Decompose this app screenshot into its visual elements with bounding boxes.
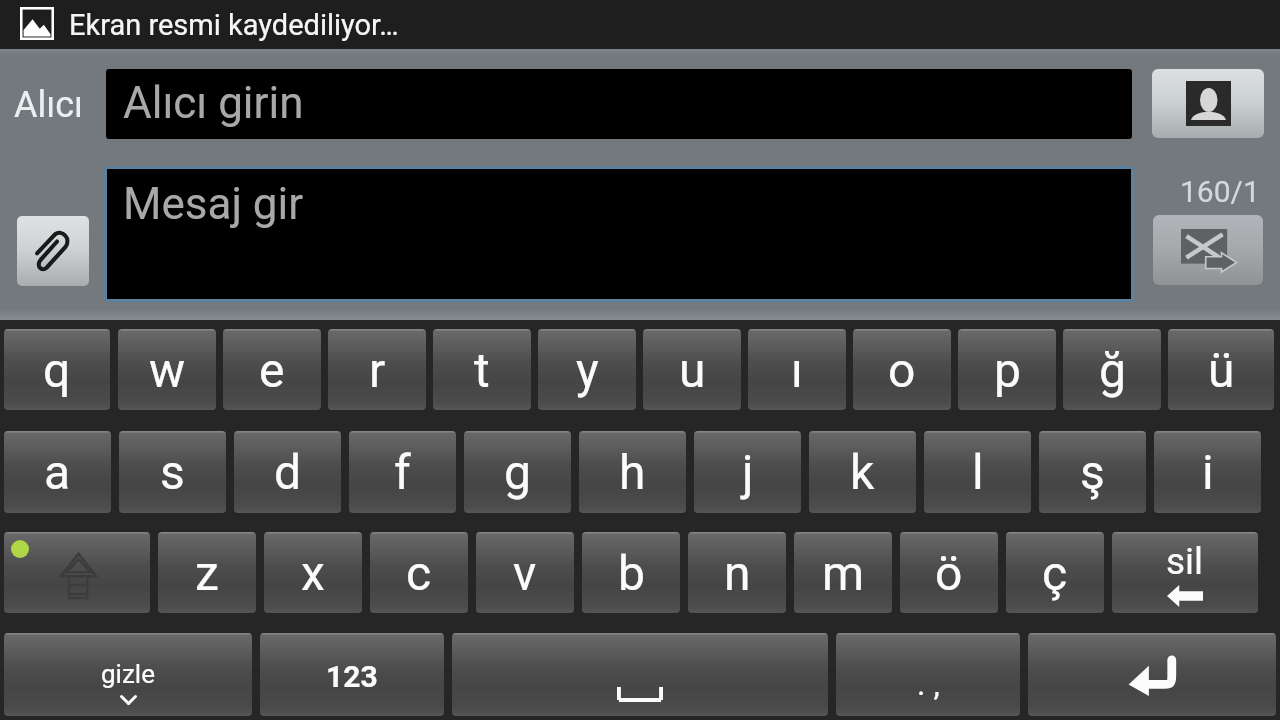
- button[interactable]: p: [958, 329, 1056, 410]
- button[interactable]: 123: [260, 633, 444, 716]
- staticText: v: [513, 545, 537, 601]
- button[interactable]: Gonder: [1153, 215, 1263, 285]
- staticText: ç: [1042, 545, 1068, 601]
- button[interactable]: Ek ekle: [17, 216, 89, 286]
- staticText: t: [474, 342, 490, 398]
- staticText: n: [724, 545, 751, 601]
- button[interactable]: k: [809, 431, 916, 513]
- button[interactable]: e: [223, 329, 321, 410]
- staticText: x: [301, 545, 325, 601]
- staticText: ö: [935, 545, 963, 601]
- staticText: b: [618, 545, 645, 601]
- button[interactable]: h: [579, 431, 686, 513]
- button[interactable]: Mesaj gir: [107, 169, 1131, 299]
- staticText: j: [742, 444, 754, 500]
- button[interactable]: ı: [748, 329, 846, 410]
- staticText: Mesaj gir: [123, 178, 304, 230]
- staticText: ı: [791, 342, 803, 398]
- staticText: f: [394, 444, 411, 500]
- button[interactable]: Sil: [1112, 532, 1258, 613]
- button[interactable]: Alıcı: [14, 82, 94, 128]
- button[interactable]: y: [538, 329, 636, 410]
- staticText: w: [149, 342, 186, 398]
- staticText: u: [679, 342, 706, 398]
- button[interactable]: . ,: [836, 633, 1020, 716]
- staticText: 123: [326, 659, 378, 694]
- button[interactable]: c: [370, 532, 468, 613]
- staticText: sil: [1166, 540, 1204, 583]
- staticText: i: [1202, 444, 1214, 500]
- button[interactable]: Alıcı girin: [106, 69, 1132, 139]
- staticText: Alıcı: [14, 84, 83, 126]
- button[interactable]: g: [464, 431, 571, 513]
- button[interactable]: Shift: [4, 532, 150, 613]
- button[interactable]: m: [794, 532, 892, 613]
- button[interactable]: x: [264, 532, 362, 613]
- button[interactable]: f: [349, 431, 456, 513]
- button[interactable]: j: [694, 431, 801, 513]
- button[interactable]: v: [476, 532, 574, 613]
- button[interactable]: t: [433, 329, 531, 410]
- button[interactable]: r: [328, 329, 426, 410]
- staticText: Alıcı girin: [123, 77, 304, 129]
- staticText: k: [850, 444, 875, 500]
- button[interactable]: ü: [1168, 329, 1274, 410]
- button[interactable]: u: [643, 329, 741, 410]
- staticText: 160/1: [1180, 174, 1260, 209]
- button[interactable]: ç: [1006, 532, 1104, 613]
- button[interactable]: l: [924, 431, 1031, 513]
- staticText: a: [44, 444, 71, 500]
- staticText: s: [160, 444, 185, 500]
- button[interactable]: s: [119, 431, 226, 513]
- button[interactable]: i: [1154, 431, 1261, 513]
- button[interactable]: ğ: [1063, 329, 1161, 410]
- button[interactable]: q: [4, 329, 110, 410]
- button[interactable]: ö: [900, 532, 998, 613]
- staticText: ğ: [1099, 342, 1126, 398]
- staticText: g: [504, 444, 531, 500]
- button[interactable]: z: [158, 532, 256, 613]
- staticText: q: [43, 342, 71, 398]
- staticText: o: [888, 342, 916, 398]
- button[interactable]: gizle: [4, 633, 252, 716]
- staticText: y: [576, 342, 599, 398]
- staticText: d: [274, 444, 302, 500]
- button[interactable]: o: [853, 329, 951, 410]
- staticText: . ,: [917, 665, 940, 703]
- staticText: p: [994, 342, 1021, 398]
- staticText: r: [369, 342, 386, 398]
- staticText: gizle: [101, 659, 155, 689]
- staticText: c: [406, 545, 432, 601]
- button[interactable]: a: [4, 431, 111, 513]
- staticText: Ekran resmi kaydediliyor…: [69, 8, 399, 42]
- staticText: m: [822, 545, 865, 601]
- button[interactable]: Kisi sec: [1152, 69, 1264, 138]
- button[interactable]: Boşluk: [452, 633, 828, 716]
- button[interactable]: n: [688, 532, 786, 613]
- button[interactable]: w: [118, 329, 216, 410]
- button[interactable]: d: [234, 431, 341, 513]
- staticText: ü: [1208, 342, 1235, 398]
- staticText: e: [259, 342, 285, 398]
- button[interactable]: Enter: [1028, 633, 1276, 716]
- staticText: l: [972, 444, 984, 500]
- staticText: ş: [1080, 444, 1105, 500]
- staticText: h: [619, 444, 646, 500]
- button[interactable]: b: [582, 532, 680, 613]
- staticText: z: [195, 545, 219, 601]
- button[interactable]: ş: [1039, 431, 1146, 513]
